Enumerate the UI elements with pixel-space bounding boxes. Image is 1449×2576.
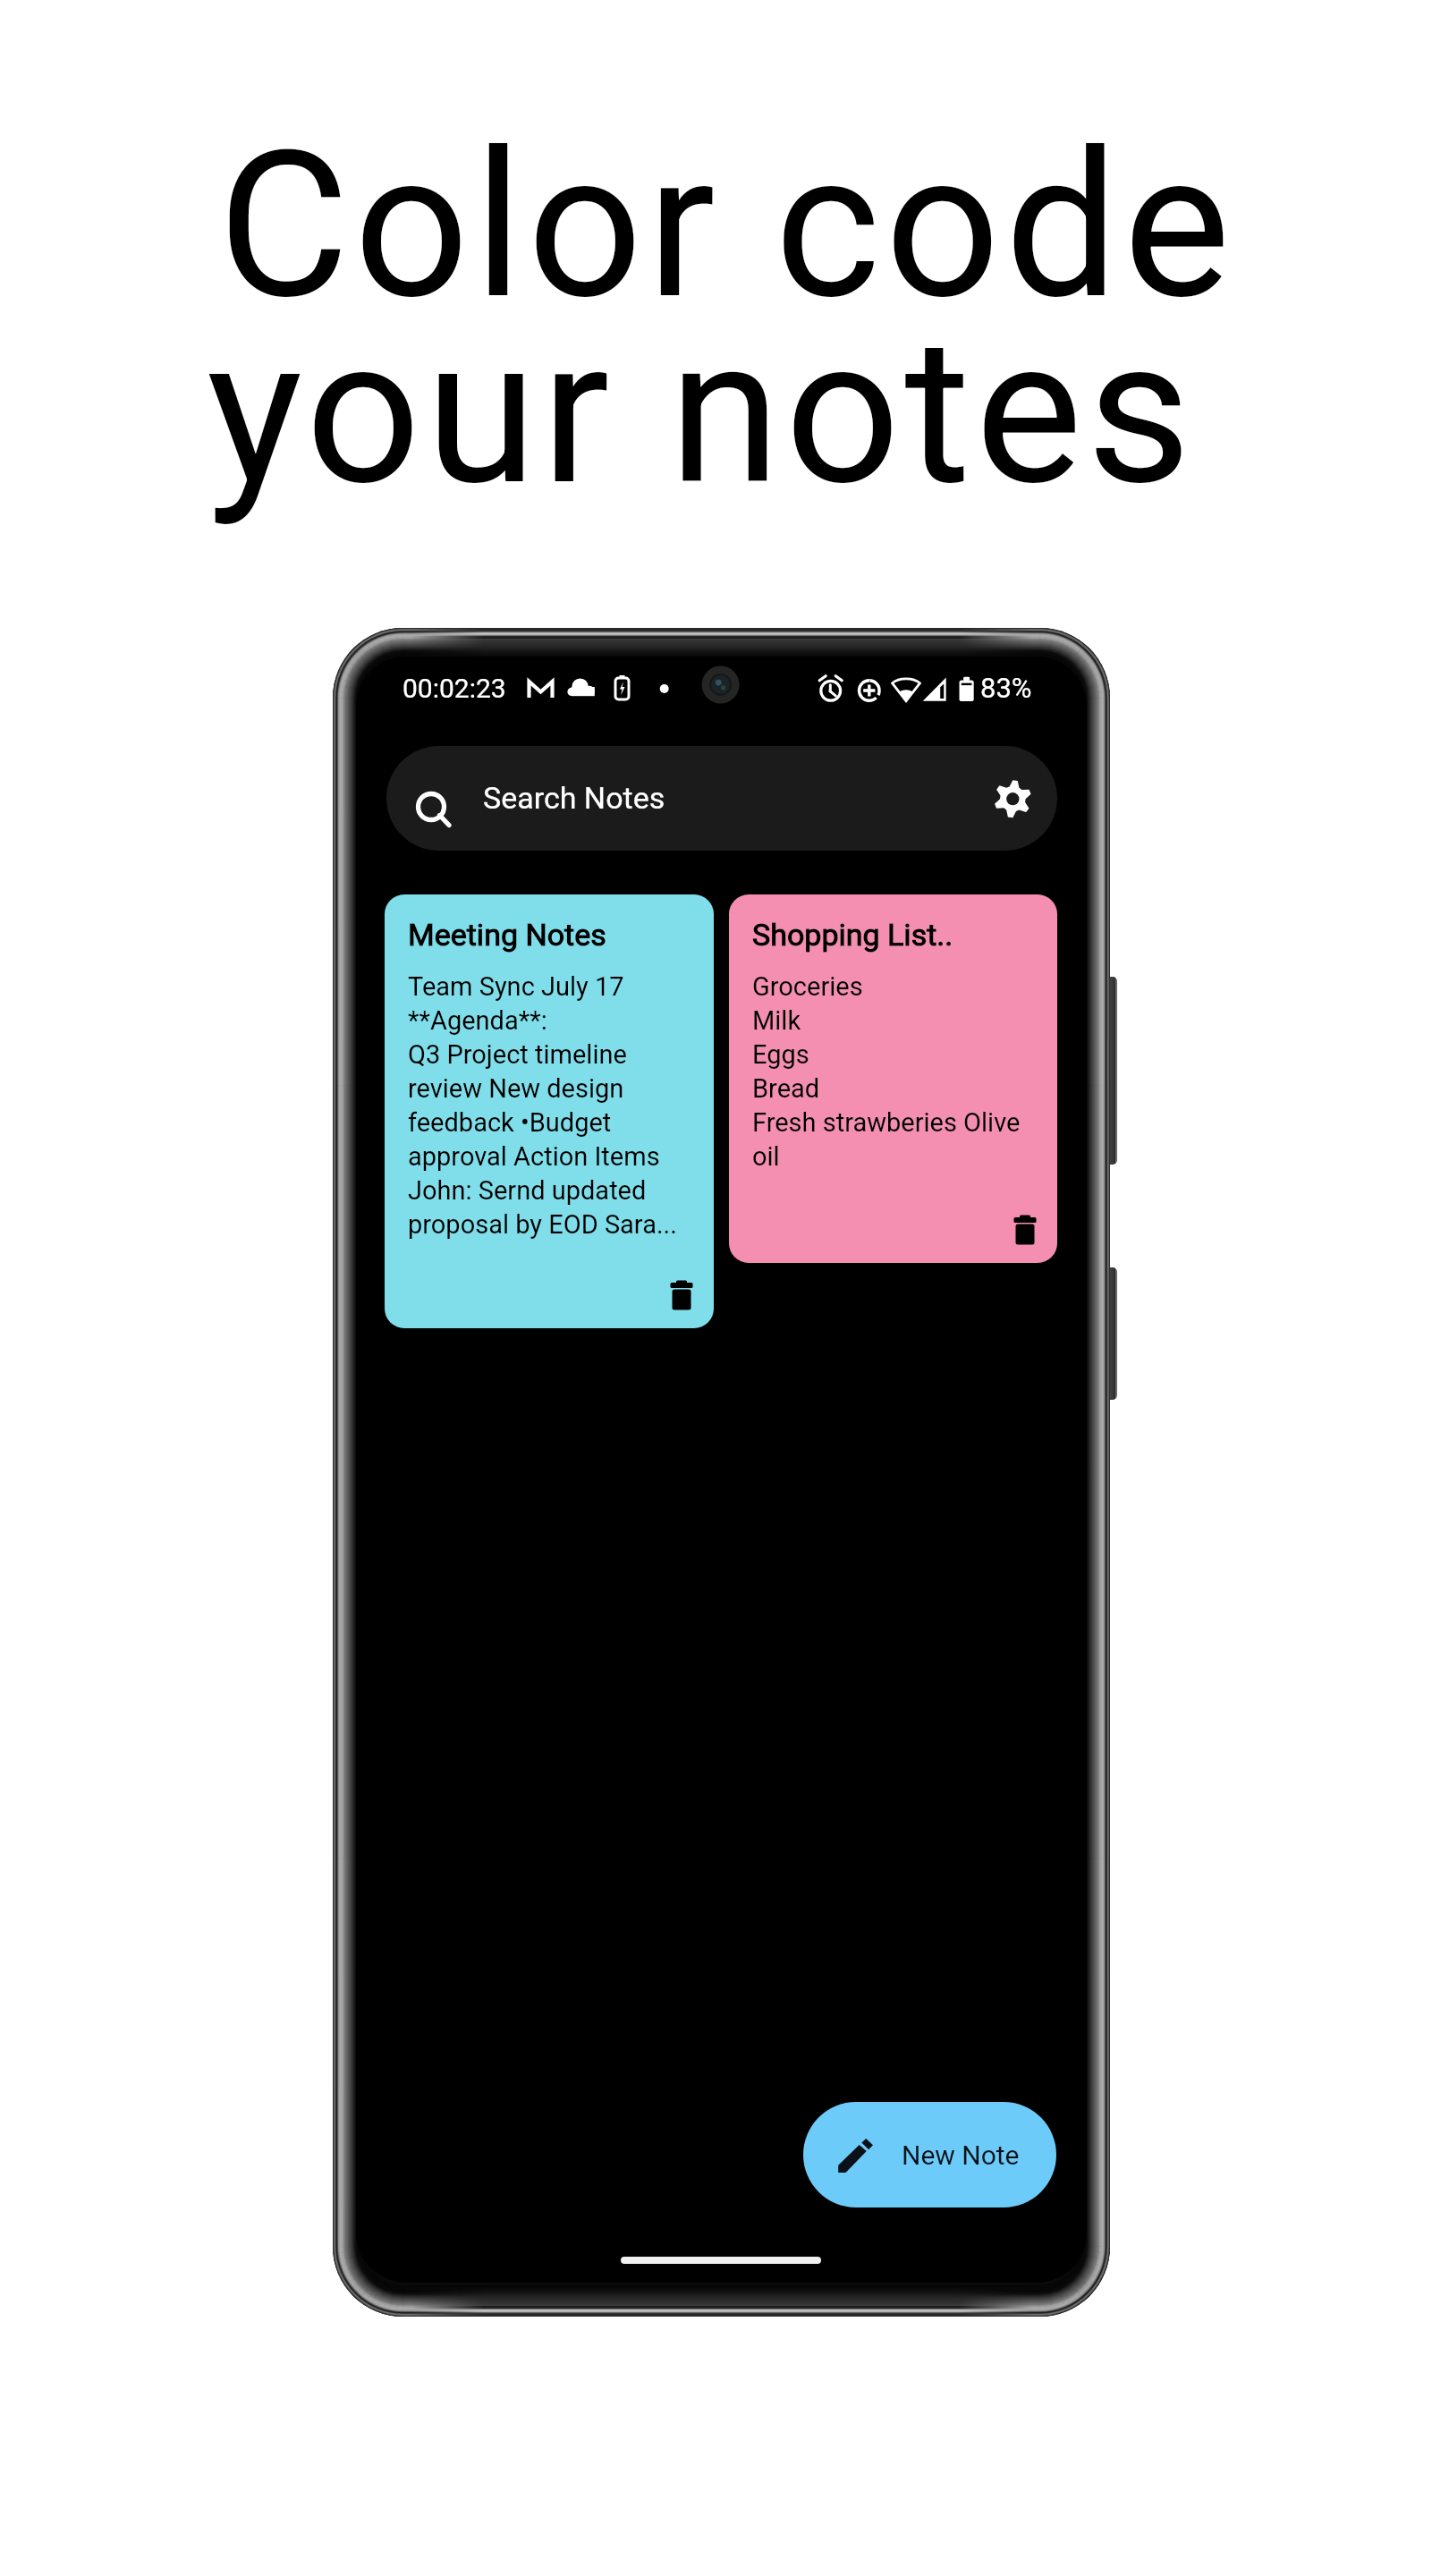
button[interactable]: Search (403, 772, 482, 851)
button[interactable]: New Note (803, 2102, 1056, 2207)
staticText: Meeting Notes (408, 917, 606, 953)
button[interactable]: Search (386, 746, 1057, 851)
staticText: Search Notes (483, 780, 665, 816)
button[interactable]: Delete note (1006, 1211, 1044, 1249)
staticText: Team Sync July 17 **Agenda**: Q3 Project… (408, 971, 691, 1240)
staticText: Groceries Milk Eggs Bread Fresh strawber… (752, 971, 1034, 1172)
button[interactable]: Meeting Notes (385, 894, 714, 1328)
staticText: Shopping List.. (752, 917, 953, 953)
staticText: New Note (902, 2140, 1020, 2171)
staticText: your notes (0, 293, 1426, 530)
staticText: Color code (2, 107, 1449, 344)
staticText: 00:02:23 (402, 673, 506, 704)
button[interactable]: Shopping List.. (729, 894, 1057, 1263)
button[interactable]: Settings (975, 761, 1050, 836)
staticText: 83% (980, 672, 1032, 704)
button[interactable]: Delete note (663, 1276, 700, 1314)
